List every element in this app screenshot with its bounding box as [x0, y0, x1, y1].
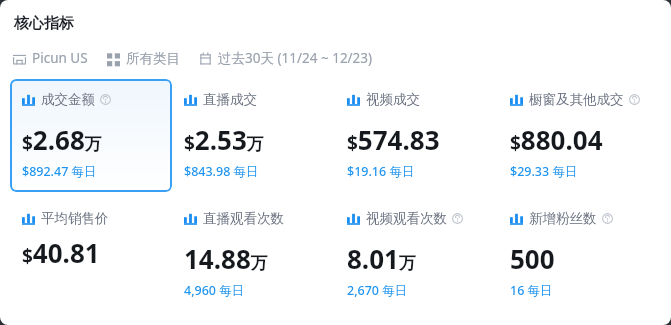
- staticText: 直播观看次数: [203, 210, 284, 227]
- staticText: $2.53万: [184, 122, 264, 157]
- staticText: 过去30天 (11/24 ~ 12/23): [218, 49, 373, 67]
- staticText: 16 每日: [510, 282, 553, 299]
- staticText: $843.98 每日: [184, 163, 259, 180]
- staticText: 新增粉丝数: [529, 210, 597, 227]
- staticText: 4,960 每日: [184, 282, 245, 299]
- staticText: $2.68万: [22, 122, 102, 157]
- button[interactable]: 平均销售价: [10, 198, 172, 282]
- button[interactable]: 过去30天 (11/24 ~ 12/23): [199, 47, 373, 69]
- staticText: $574.83: [347, 122, 440, 157]
- staticText: 500: [510, 241, 555, 276]
- staticText: 8.01万: [347, 241, 416, 276]
- button[interactable]: 视频观看次数: [335, 198, 498, 311]
- staticText: $29.33 每日: [510, 163, 578, 180]
- staticText: 成交金额: [41, 91, 95, 108]
- staticText: 直播成交: [203, 91, 257, 108]
- staticText: 视频观看次数: [366, 210, 447, 227]
- button[interactable]: 所有类目: [107, 48, 180, 69]
- button[interactable]: Picun US: [13, 47, 88, 69]
- staticText: 所有类目: [126, 50, 180, 67]
- button[interactable]: 橱窗及其他成交: [498, 79, 661, 192]
- staticText: 平均销售价: [41, 210, 109, 227]
- staticText: $880.04: [510, 122, 603, 157]
- button[interactable]: 直播观看次数: [172, 198, 335, 311]
- staticText: 视频成交: [366, 91, 420, 108]
- staticText: 核心指标: [14, 14, 74, 33]
- button[interactable]: 视频成交: [335, 79, 498, 192]
- staticText: Picun US: [32, 49, 88, 67]
- staticText: $19.16 每日: [347, 163, 415, 180]
- button[interactable]: 成交金额: [10, 79, 172, 192]
- button[interactable]: 直播成交: [172, 79, 335, 192]
- staticText: 橱窗及其他成交: [529, 91, 624, 108]
- staticText: 2,670 每日: [347, 282, 408, 299]
- staticText: 14.88万: [184, 241, 268, 276]
- button[interactable]: 新增粉丝数: [498, 198, 661, 311]
- staticText: $40.81: [22, 235, 100, 270]
- staticText: $892.47 每日: [22, 163, 97, 180]
